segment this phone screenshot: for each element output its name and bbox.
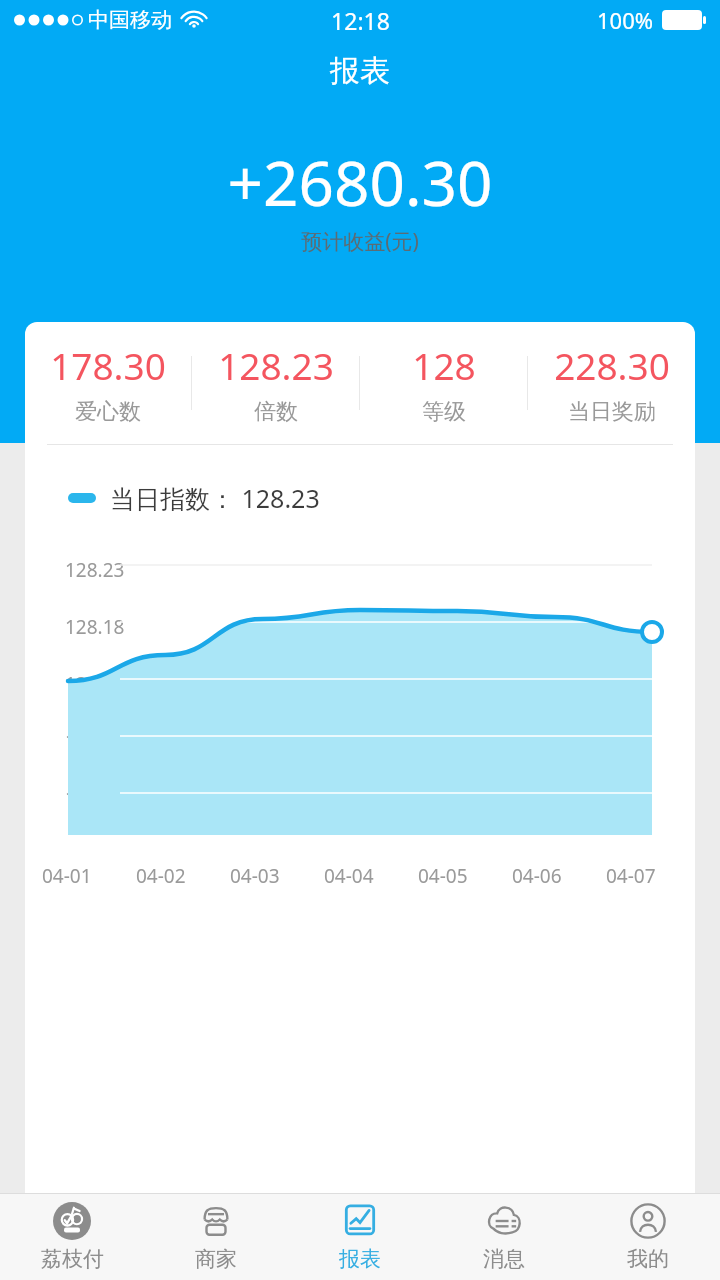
button[interactable]: 报表 bbox=[288, 1196, 432, 1278]
staticText: 128.23 bbox=[218, 340, 334, 390]
staticText: 128 bbox=[412, 340, 476, 390]
staticText: 12:18 bbox=[331, 5, 390, 36]
staticText: 128.05 bbox=[65, 785, 125, 811]
staticText: 当日奖励 bbox=[568, 398, 656, 426]
other: 荔枝付 bbox=[53, 1202, 91, 1240]
other: 商家 bbox=[197, 1202, 235, 1240]
staticText: +2680.30 bbox=[0, 140, 720, 224]
staticText: 228.30 bbox=[554, 340, 670, 390]
staticText: 04-04 bbox=[324, 863, 374, 889]
staticText: 04-05 bbox=[418, 863, 468, 889]
staticText: 中国移动 bbox=[88, 7, 172, 33]
staticText: 商家 bbox=[195, 1246, 237, 1272]
other: 我的 bbox=[629, 1202, 667, 1240]
staticText: 爱心数 bbox=[75, 398, 141, 426]
staticText: 04-02 bbox=[136, 863, 186, 889]
other: 报表 bbox=[341, 1202, 379, 1240]
staticText: 报表 bbox=[0, 52, 720, 90]
button[interactable]: 128.23 bbox=[192, 340, 359, 426]
staticText: 报表 bbox=[339, 1246, 381, 1272]
staticText: 178.30 bbox=[50, 340, 166, 390]
staticText: 128.10 bbox=[65, 728, 125, 754]
button[interactable]: 商家 bbox=[144, 1196, 288, 1278]
button[interactable]: 228.30 bbox=[528, 340, 695, 426]
staticText: 04-03 bbox=[230, 863, 280, 889]
staticText: 等级 bbox=[422, 398, 466, 426]
staticText: 100% bbox=[597, 5, 654, 35]
staticText: 我的 bbox=[627, 1246, 669, 1272]
staticText: 消息 bbox=[483, 1246, 525, 1272]
button[interactable]: 荔枝付 bbox=[0, 1196, 144, 1278]
staticText: 128.23 bbox=[65, 557, 125, 583]
staticText: 荔枝付 bbox=[41, 1246, 104, 1272]
staticText: 预计收益(元) bbox=[0, 227, 720, 256]
button[interactable]: 178.30 bbox=[25, 340, 191, 426]
other: 消息 bbox=[485, 1202, 523, 1240]
staticText: 128.18 bbox=[65, 614, 125, 640]
staticText: 04-07 bbox=[606, 863, 656, 889]
staticText: 04-01 bbox=[42, 863, 92, 889]
staticText: 当日指数： 128.23 bbox=[110, 481, 320, 515]
staticText: 128.12 bbox=[65, 671, 125, 697]
button[interactable]: 128 bbox=[360, 340, 527, 426]
staticText: 04-06 bbox=[512, 863, 562, 889]
staticText: 倍数 bbox=[254, 398, 298, 426]
button[interactable]: 我的 bbox=[576, 1196, 720, 1278]
button[interactable]: 消息 bbox=[432, 1196, 576, 1278]
